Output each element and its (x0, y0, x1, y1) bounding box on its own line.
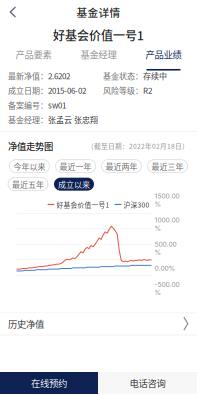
button[interactable]: 产品业绩 (131, 46, 196, 64)
staticText: 最近一年 (59, 160, 91, 172)
staticText: 产品要素 (15, 47, 51, 61)
staticText: 产品业绩 (145, 47, 181, 61)
button[interactable]: 在线预约 (0, 372, 98, 394)
staticText: 电话咨询 (129, 376, 165, 390)
staticText: （截至日期：2022年02月18日） (87, 141, 189, 151)
staticText: 好基会价值一号1 (56, 200, 109, 209)
staticText: 基金经理 (80, 47, 116, 61)
staticText: 基金经理： (8, 114, 48, 125)
button[interactable]: 最近五年 (8, 178, 48, 191)
button[interactable]: 最近两年 (101, 160, 141, 173)
staticText: -500.00% (154, 280, 179, 297)
staticText: 最新净值： (8, 70, 48, 82)
staticText: 最近两年 (105, 160, 137, 172)
staticText: 风险等级： (103, 85, 143, 96)
staticText: 成立日期： (8, 85, 48, 96)
staticText: 净值走势图 (8, 139, 53, 153)
staticText: 备案编号： (8, 99, 48, 111)
button[interactable]: Back (0, 0, 26, 24)
staticText: 存续中 (143, 70, 167, 82)
staticText: 在线预约 (31, 376, 67, 390)
staticText: 2.6202 (48, 70, 70, 82)
staticText: 张孟云 张忠翔 (48, 114, 98, 125)
staticText: 今年以来 (13, 160, 45, 172)
staticText: sw01 (48, 99, 66, 111)
staticText: 基金详情 (76, 4, 120, 20)
button[interactable]: 电话咨询 (98, 372, 197, 394)
staticText: R2 (143, 85, 152, 96)
button[interactable]: 产品要素 (1, 46, 66, 64)
staticText: 最近五年 (12, 178, 44, 190)
staticText: 好基会价值一号1 (53, 26, 144, 44)
staticText: 1500.00% (154, 192, 179, 208)
button[interactable]: 历史净值 (0, 313, 197, 335)
button[interactable]: 今年以来 (9, 160, 49, 173)
staticText: 基金状态： (103, 70, 143, 82)
button[interactable]: 基金经理 (66, 46, 131, 64)
button[interactable]: 最近三年 (147, 160, 187, 173)
staticText: 成立以来 (58, 178, 90, 190)
staticText: 沪深300 (123, 200, 149, 209)
staticText: 历史净值 (8, 317, 44, 330)
button[interactable]: 成立以来 (54, 178, 94, 191)
button[interactable]: 最近一年 (55, 160, 95, 173)
staticText: 1000.00% (154, 216, 179, 232)
staticText: 0.00% (154, 264, 175, 272)
staticText: 500.00% (154, 240, 176, 256)
staticText: 2015-06-02 (48, 85, 86, 96)
staticText: 最近三年 (151, 160, 183, 172)
